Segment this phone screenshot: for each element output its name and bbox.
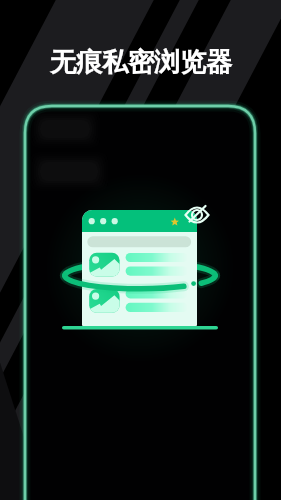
staticText: 无痕私密浏览器	[50, 46, 232, 79]
